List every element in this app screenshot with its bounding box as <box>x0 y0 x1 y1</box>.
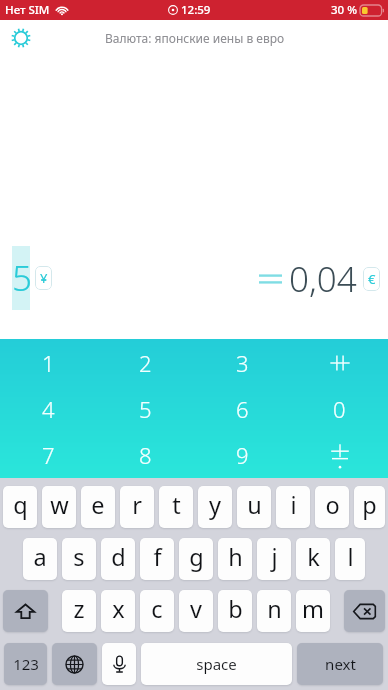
button[interactable]: u <box>237 486 271 528</box>
button[interactable]: next <box>297 643 383 685</box>
staticText: 0,04 <box>289 255 357 303</box>
staticText: c <box>151 593 163 625</box>
staticText: n <box>267 593 282 625</box>
button[interactable]: a <box>23 538 57 580</box>
button[interactable]: q <box>3 486 37 528</box>
button[interactable]: Shift <box>3 590 48 632</box>
staticText: l <box>347 541 354 573</box>
staticText: p <box>362 489 377 521</box>
staticText: d <box>111 541 126 573</box>
staticText: e <box>91 489 105 521</box>
button[interactable]: 7 <box>0 432 97 478</box>
staticText: 5 <box>12 254 30 302</box>
staticText: o <box>325 489 340 521</box>
staticText: 3 <box>236 348 249 378</box>
staticText: b <box>228 593 243 625</box>
staticText: h <box>228 541 243 573</box>
staticText: m <box>302 593 324 625</box>
button[interactable]: 0 <box>291 386 388 432</box>
staticText: ¥ <box>40 269 48 287</box>
staticText: r <box>132 489 142 521</box>
staticText: i <box>290 489 297 521</box>
staticText: z <box>73 593 85 625</box>
button[interactable]: 5 <box>97 386 194 432</box>
staticText: 30 % <box>331 2 357 18</box>
staticText: 8 <box>139 440 152 470</box>
button[interactable]: r <box>120 486 154 528</box>
staticText: x <box>112 593 125 625</box>
button[interactable]: k <box>296 538 330 580</box>
staticText: k <box>307 541 320 573</box>
button[interactable]: f <box>140 538 174 580</box>
button[interactable]: x <box>101 590 135 632</box>
button[interactable]: w <box>42 486 76 528</box>
button[interactable]: 3 <box>194 339 291 386</box>
staticText: t <box>172 489 181 521</box>
button[interactable]: s <box>62 538 96 580</box>
button[interactable]: ¥ <box>35 266 52 290</box>
staticText: next <box>325 654 356 674</box>
button[interactable]: Backspace <box>344 590 385 632</box>
button[interactable]: 8 <box>97 432 194 478</box>
staticText: j <box>271 541 278 573</box>
button[interactable]: o <box>315 486 349 528</box>
staticText: 1 <box>42 348 55 378</box>
button[interactable]: v <box>179 590 213 632</box>
staticText: 12:59 <box>181 2 211 18</box>
button[interactable]: 2 <box>97 339 194 386</box>
button[interactable]: p <box>354 486 385 528</box>
button[interactable]: Dictation <box>102 643 136 685</box>
button[interactable]: y <box>198 486 232 528</box>
staticText: s <box>73 541 85 573</box>
staticText: space <box>196 654 237 674</box>
button[interactable]: g <box>179 538 213 580</box>
button[interactable]: j <box>257 538 291 580</box>
staticText: 7 <box>42 440 55 470</box>
staticText: € <box>368 270 376 288</box>
button[interactable]: m <box>296 590 330 632</box>
button[interactable]: l <box>335 538 365 580</box>
staticText: a <box>33 541 47 573</box>
staticText: 4 <box>42 394 55 424</box>
button[interactable]: t <box>159 486 193 528</box>
button[interactable]: 9 <box>194 432 291 478</box>
staticText: 9 <box>236 440 249 470</box>
staticText: 123 <box>13 654 39 674</box>
staticText: g <box>189 541 204 573</box>
staticText: 5 <box>139 394 152 424</box>
button[interactable]: Plus minus <box>291 339 388 386</box>
button[interactable]: c <box>140 590 174 632</box>
staticText: u <box>247 489 262 521</box>
button[interactable]: € <box>363 267 380 291</box>
button[interactable]: 123 <box>4 643 47 685</box>
button[interactable]: i <box>276 486 310 528</box>
button[interactable]: 4 <box>0 386 97 432</box>
button[interactable]: Settings <box>5 22 37 54</box>
button[interactable]: Change language <box>52 643 97 685</box>
staticText: w <box>50 489 69 521</box>
staticText: y <box>209 489 221 521</box>
button[interactable]: Multiply divide <box>291 432 388 478</box>
button[interactable]: space <box>141 643 292 685</box>
button[interactable]: b <box>218 590 252 632</box>
staticText: 6 <box>236 394 249 424</box>
staticText: Валюта: японские иены в евро <box>105 30 285 46</box>
button[interactable]: n <box>257 590 291 632</box>
button[interactable]: h <box>218 538 252 580</box>
button[interactable]: e <box>81 486 115 528</box>
staticText: q <box>13 489 28 521</box>
button[interactable]: 1 <box>0 339 97 386</box>
staticText: v <box>190 593 202 625</box>
button[interactable]: 6 <box>194 386 291 432</box>
staticText: f <box>153 541 162 573</box>
staticText: Нет SIM <box>5 2 50 18</box>
button[interactable]: d <box>101 538 135 580</box>
staticText: 0 <box>333 394 346 424</box>
staticText: 2 <box>139 348 152 378</box>
button[interactable]: z <box>62 590 96 632</box>
